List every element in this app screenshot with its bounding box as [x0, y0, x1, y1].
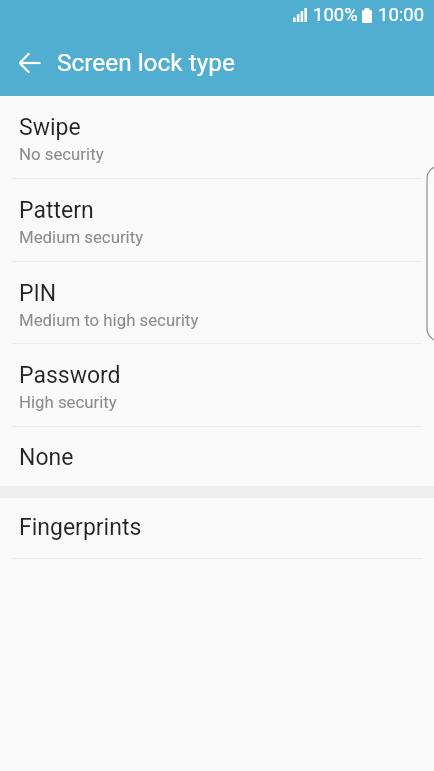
staticText: Medium security	[19, 227, 144, 247]
staticText: High security	[19, 392, 117, 412]
button[interactable]: Navigate up	[8, 41, 52, 85]
button[interactable]: PIN	[0, 262, 434, 343]
staticText: 100%	[313, 4, 358, 26]
staticText: Swipe	[19, 114, 81, 141]
staticText: PIN	[19, 280, 57, 307]
staticText: Pattern	[19, 197, 94, 224]
button[interactable]: Swipe	[0, 96, 434, 178]
staticText: Screen lock type	[57, 48, 235, 77]
staticText: None	[19, 444, 74, 471]
staticText: 10:00	[378, 4, 425, 26]
button[interactable]: None	[0, 427, 434, 486]
button[interactable]: Pattern	[0, 179, 434, 261]
staticText: Password	[19, 362, 121, 389]
staticText: Medium to high security	[19, 310, 199, 330]
staticText: No security	[19, 144, 104, 164]
button[interactable]: Password	[0, 344, 434, 426]
button[interactable]: Fingerprints	[0, 498, 434, 558]
staticText: Fingerprints	[19, 514, 142, 541]
